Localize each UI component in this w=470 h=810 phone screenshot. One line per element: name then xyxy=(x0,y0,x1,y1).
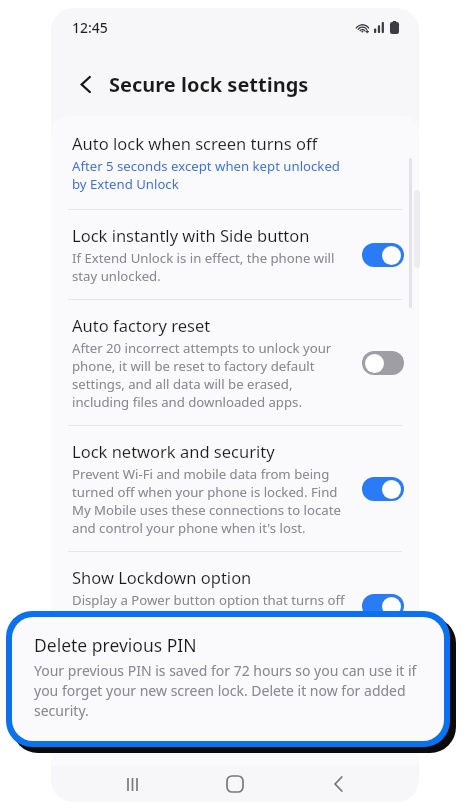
button[interactable]: Recents xyxy=(109,766,155,802)
staticText: If Extend Unlock is in effect, the phone… xyxy=(72,249,351,285)
staticText: Delete previous PIN xyxy=(34,633,197,657)
staticText: Auto factory reset xyxy=(72,314,211,336)
staticText: Secure lock settings xyxy=(109,71,309,98)
button[interactable]: Auto factory reset xyxy=(51,300,419,425)
button[interactable]: Back xyxy=(69,67,103,101)
button[interactable]: Toggle off xyxy=(361,350,405,376)
button[interactable]: Lock instantly with Side button xyxy=(51,210,419,299)
staticText: Show Lockdown option xyxy=(72,566,252,588)
button[interactable]: Back xyxy=(316,766,362,802)
button[interactable]: Toggle on xyxy=(361,593,405,619)
staticText: Lock instantly with Side button xyxy=(72,224,310,246)
staticText: After 5 seconds except when kept unlocke… xyxy=(72,157,351,193)
button[interactable]: Lock network and security xyxy=(51,426,419,551)
button[interactable]: Toggle on xyxy=(361,476,405,502)
staticText: Lock network and security xyxy=(72,440,275,462)
button[interactable]: Home xyxy=(212,766,258,802)
button[interactable]: Auto lock when screen turns off xyxy=(51,116,419,209)
staticText: Prevent Wi-Fi and mobile data from being… xyxy=(72,465,351,537)
button[interactable]: Toggle on xyxy=(361,242,405,268)
staticText: After 20 incorrect attempts to unlock yo… xyxy=(72,339,351,411)
staticText: Display a Power button option that turns… xyxy=(72,591,351,645)
staticText: Your previous PIN is saved for 72 hours … xyxy=(34,661,426,720)
button[interactable]: Show Lockdown option xyxy=(51,552,419,659)
staticText: Auto lock when screen turns off xyxy=(72,132,318,154)
button[interactable]: Delete previous PIN xyxy=(12,617,444,741)
staticText: 12:45 xyxy=(72,18,108,37)
